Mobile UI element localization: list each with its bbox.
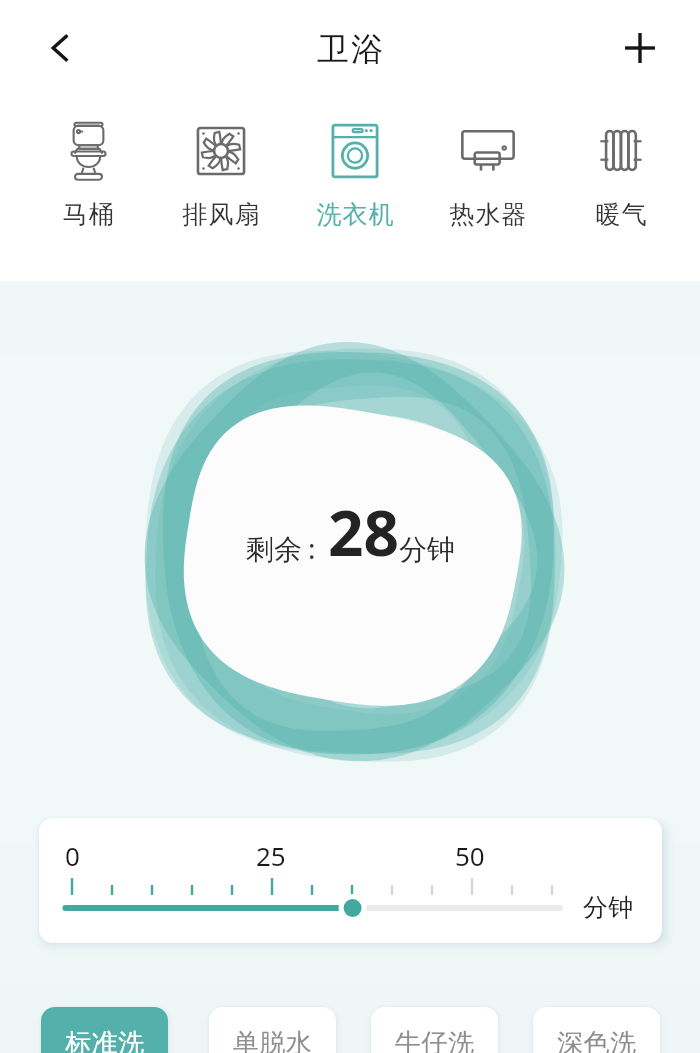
staticText: 分钟 bbox=[399, 532, 455, 567]
staticText: 剩余 bbox=[246, 532, 302, 567]
staticText: 马桶 bbox=[62, 199, 114, 230]
staticText: 标准洗 bbox=[65, 1027, 145, 1053]
staticText: 25 bbox=[256, 838, 286, 873]
button[interactable]: 洗衣机 bbox=[293, 108, 417, 234]
staticText: 深色洗 bbox=[557, 1027, 637, 1053]
staticText: 分钟 bbox=[583, 892, 633, 923]
button[interactable]: 单脱水 bbox=[209, 1007, 336, 1053]
button[interactable]: 深色洗 bbox=[533, 1007, 660, 1053]
button[interactable]: 排风扇 bbox=[159, 108, 283, 234]
staticText: : bbox=[308, 529, 316, 567]
button[interactable]: 暖气 bbox=[559, 108, 683, 234]
staticText: 28 bbox=[328, 490, 399, 574]
staticText: 洗衣机 bbox=[316, 199, 394, 230]
button[interactable]: 马桶 bbox=[26, 108, 150, 234]
staticText: 暖气 bbox=[595, 199, 647, 230]
staticText: 0 bbox=[65, 838, 80, 873]
button[interactable]: 标准洗 bbox=[41, 1007, 168, 1053]
staticText: 卫浴 bbox=[316, 29, 384, 69]
staticText: 牛仔洗 bbox=[395, 1027, 475, 1053]
button[interactable]: Add bbox=[612, 20, 668, 76]
button[interactable]: Back bbox=[32, 20, 88, 76]
button[interactable]: 牛仔洗 bbox=[371, 1007, 498, 1053]
staticText: 排风扇 bbox=[182, 199, 260, 230]
staticText: 单脱水 bbox=[233, 1027, 313, 1053]
staticText: 热水器 bbox=[449, 199, 527, 230]
button[interactable]: 热水器 bbox=[426, 108, 550, 234]
staticText: 50 bbox=[455, 838, 485, 873]
